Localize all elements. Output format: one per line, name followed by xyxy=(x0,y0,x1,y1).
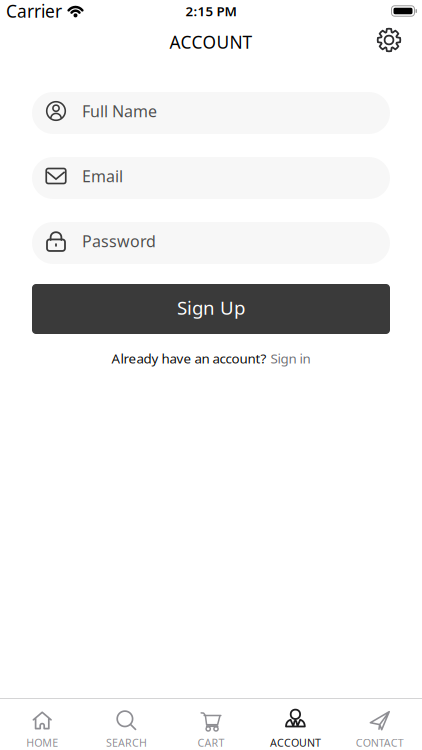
staticText: SEARCH xyxy=(106,735,147,750)
button[interactable]: CART xyxy=(169,708,253,750)
staticText: Sign in xyxy=(270,349,310,367)
button[interactable]: SEARCH xyxy=(84,708,169,750)
button[interactable]: ACCOUNT xyxy=(253,708,338,750)
staticText: CONTACT xyxy=(356,735,404,750)
staticText: Already have an account? xyxy=(111,349,266,367)
staticText: CART xyxy=(197,735,224,750)
staticText: Carrier xyxy=(6,0,62,22)
staticText: ACCOUNT xyxy=(169,30,252,53)
button[interactable]: Sign Up xyxy=(32,284,390,334)
button[interactable]: CONTACT xyxy=(338,708,422,750)
button[interactable]: Full Name xyxy=(32,92,390,134)
button[interactable]: Sign in xyxy=(270,349,310,367)
staticText: Password xyxy=(82,230,156,252)
staticText: HOME xyxy=(26,735,58,750)
staticText: 2:15 PM xyxy=(185,2,236,20)
staticText: Full Name xyxy=(82,100,157,122)
button[interactable]: HOME xyxy=(0,708,84,750)
button[interactable]: Email xyxy=(32,157,390,199)
button[interactable]: Settings xyxy=(376,27,402,53)
staticText: Email xyxy=(82,165,123,187)
button[interactable]: Password xyxy=(32,222,390,264)
staticText: ACCOUNT xyxy=(270,735,321,750)
staticText: Sign Up xyxy=(177,295,245,320)
